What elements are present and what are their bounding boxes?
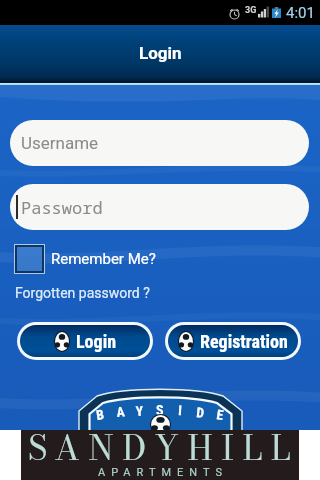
staticText: APARTMENTS — [98, 466, 229, 479]
staticText: SANDYHILL — [28, 430, 299, 473]
staticText: Username — [21, 133, 99, 153]
other: Signal strength — [258, 7, 269, 19]
button[interactable]: Remember Me? — [14, 243, 156, 275]
staticText: Remember Me? — [51, 250, 156, 268]
staticText: 3G — [245, 5, 257, 16]
other: Alarm set — [228, 7, 241, 20]
staticText: Registration — [200, 331, 288, 352]
button[interactable]: Username — [10, 120, 309, 166]
staticText: 4:01 — [286, 4, 315, 22]
button[interactable]: Login — [20, 325, 150, 357]
button[interactable]: Forgotten password ? — [15, 285, 150, 301]
button[interactable]: Password — [10, 184, 309, 230]
button[interactable]: Registration — [168, 325, 298, 357]
staticText: Password — [21, 196, 103, 219]
other: Battery charging — [272, 7, 281, 19]
staticText: Login — [76, 331, 117, 352]
staticText: Login — [139, 43, 182, 63]
button[interactable]: SANDYHILL — [21, 430, 299, 480]
